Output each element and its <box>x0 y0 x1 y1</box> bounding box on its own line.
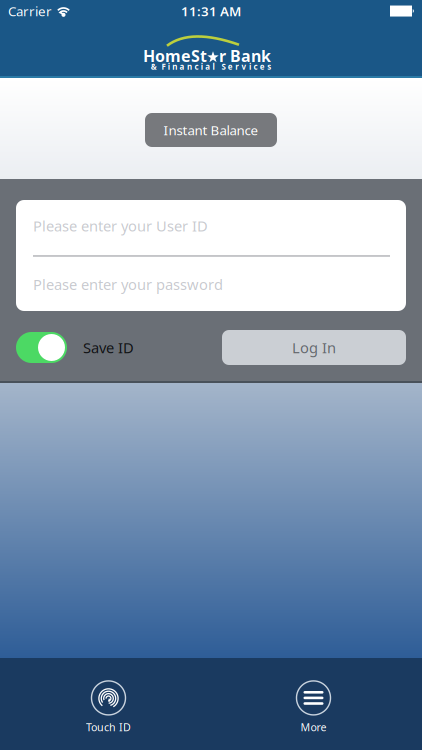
staticText: HomeSt <box>143 45 207 66</box>
button[interactable]: Instant Balance <box>145 113 277 147</box>
button[interactable]: Save ID <box>16 332 67 363</box>
staticText: Please enter your password <box>33 274 223 294</box>
staticText: & F i n a n c i a l S e r v i c e s <box>151 61 271 72</box>
button[interactable]: Log In <box>222 330 406 365</box>
button[interactable]: More <box>211 681 416 734</box>
staticText: r Bank <box>219 45 271 66</box>
staticText: Please enter your User ID <box>33 216 208 235</box>
staticText: Instant Balance <box>163 121 258 139</box>
staticText: Save ID <box>83 338 134 357</box>
staticText: Log In <box>292 338 336 357</box>
staticText: More <box>300 720 326 734</box>
staticText: 11:31 AM <box>181 2 241 20</box>
staticText: Carrier <box>8 2 52 20</box>
button[interactable]: Touch ID <box>6 681 211 734</box>
staticText: Touch ID <box>86 720 131 734</box>
